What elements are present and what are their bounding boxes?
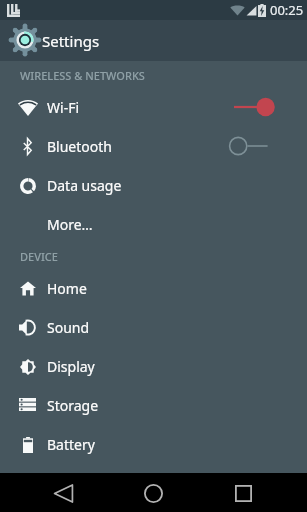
button[interactable]: Sound — [0, 308, 307, 347]
staticText: Bluetooth — [47, 137, 112, 156]
button[interactable]: Back — [18, 474, 108, 512]
button[interactable]: Battery — [0, 425, 307, 464]
button[interactable]: Storage — [0, 386, 307, 425]
staticText: WIRELESS & NETWORKS — [20, 68, 145, 83]
staticText: Home — [47, 279, 87, 298]
button[interactable]: Display — [0, 347, 307, 386]
button[interactable]: Wi-Fi — [0, 88, 307, 127]
staticText: DEVICE — [20, 249, 58, 264]
button[interactable]: Home — [0, 269, 307, 308]
staticText: Wi-Fi — [47, 98, 80, 117]
staticText: Display — [47, 357, 95, 376]
staticText: More… — [47, 215, 93, 234]
button[interactable]: More… — [0, 205, 307, 244]
button[interactable]: Recent apps — [198, 474, 288, 512]
button[interactable]: Home — [108, 474, 198, 512]
staticText: Sound — [47, 318, 90, 337]
button[interactable]: Bluetooth — [0, 127, 307, 166]
button[interactable]: Off — [229, 127, 307, 166]
staticText: Data usage — [47, 176, 122, 195]
button[interactable]: Data usage — [0, 166, 307, 205]
button[interactable]: On — [229, 88, 307, 127]
staticText: Battery — [47, 435, 95, 454]
staticText: 00:25 — [270, 1, 304, 19]
staticText: Storage — [47, 396, 99, 415]
staticText: Settings — [42, 31, 100, 51]
